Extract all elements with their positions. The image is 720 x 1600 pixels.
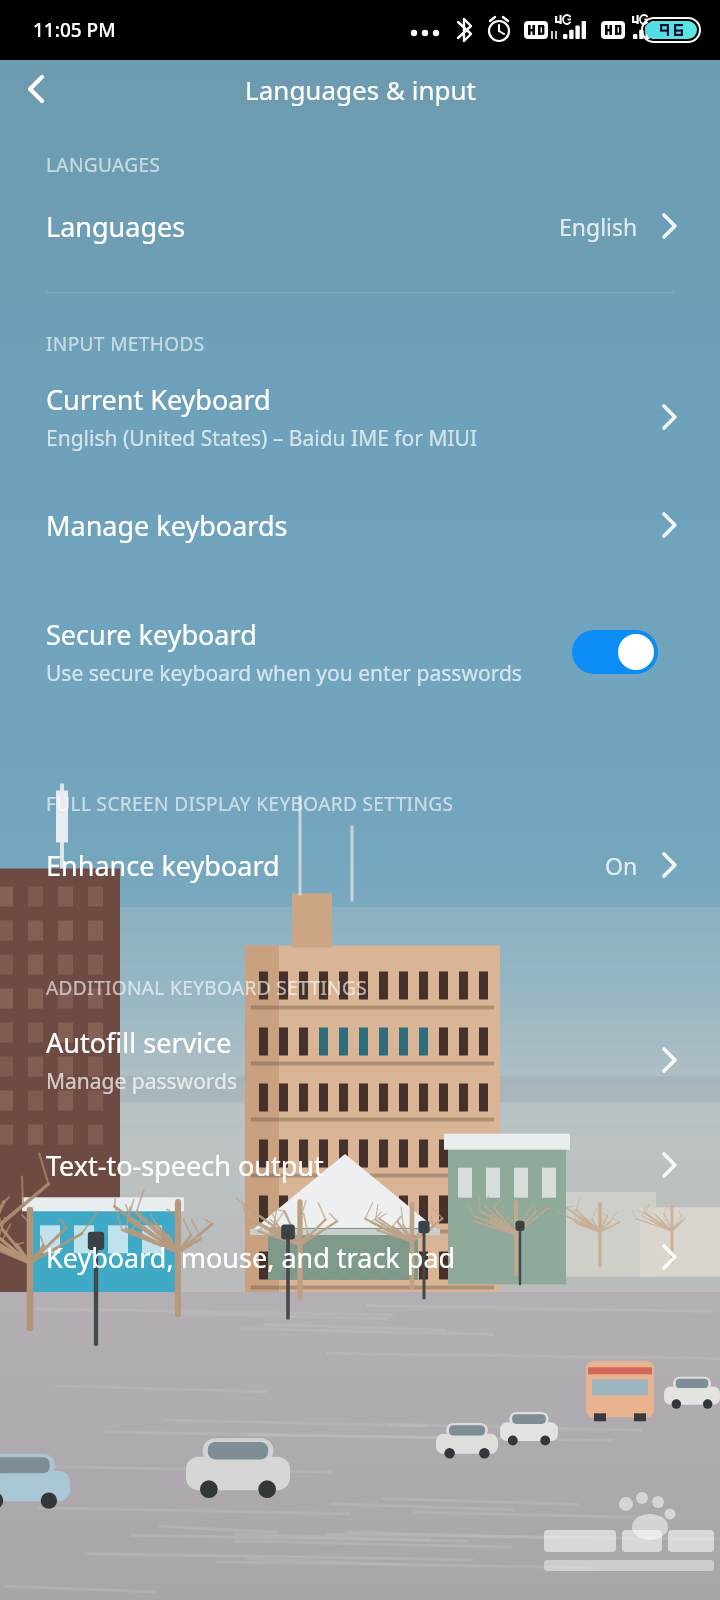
staticText: FULL SCREEN DISPLAY KEYBOARD SETTINGS xyxy=(46,791,454,817)
staticText: On xyxy=(605,850,638,881)
staticText: ADDITIONAL KEYBOARD SETTINGS xyxy=(46,975,368,1001)
staticText: Use secure keyboard when you enter passw… xyxy=(46,659,522,688)
staticText: 11:05 PM xyxy=(33,17,116,43)
staticText: Manage passwords xyxy=(46,1067,238,1096)
button[interactable]: Secure keyboard xyxy=(0,573,720,731)
staticText: Current Keyboard xyxy=(46,381,271,418)
staticText: LANGUAGES xyxy=(46,152,161,178)
staticText: Autofill service xyxy=(46,1024,232,1061)
staticText: English (United States) – Baidu IME for … xyxy=(46,424,478,453)
staticText: Secure keyboard xyxy=(46,616,257,653)
button[interactable]: Autofill service xyxy=(0,1001,720,1119)
button[interactable]: Languages xyxy=(0,178,720,274)
staticText: English xyxy=(559,211,638,242)
staticText: Text-to-speech output xyxy=(46,1147,324,1184)
staticText: Languages xyxy=(46,208,186,245)
staticText: INPUT METHODS xyxy=(46,331,205,357)
button[interactable]: Enhance keyboard xyxy=(0,817,720,913)
staticText: Keyboard, mouse, and track pad xyxy=(46,1239,456,1276)
staticText: Enhance keyboard xyxy=(46,847,280,884)
button[interactable]: Manage keyboards xyxy=(0,477,720,573)
button[interactable]: Back xyxy=(0,60,72,118)
button[interactable]: Current Keyboard xyxy=(0,357,720,477)
staticText: Manage keyboards xyxy=(46,507,288,544)
staticText: Languages & input xyxy=(245,72,476,107)
button[interactable]: Text-to-speech output xyxy=(0,1119,720,1211)
button[interactable]: Keyboard, mouse, and track pad xyxy=(0,1211,720,1303)
